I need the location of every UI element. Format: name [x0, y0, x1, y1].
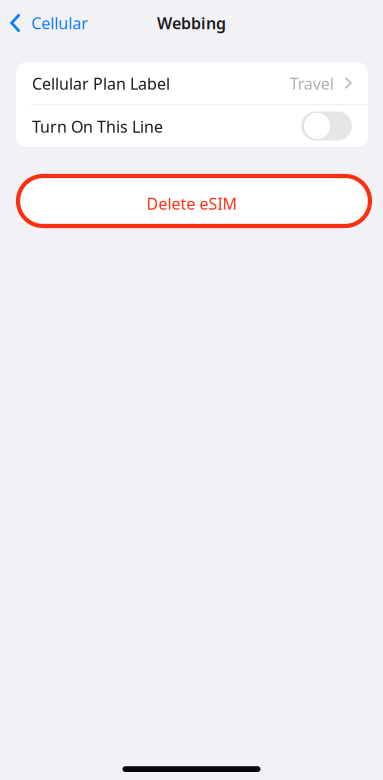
staticText: Turn On This Line: [32, 116, 163, 137]
button[interactable]: Turn On This Line: [301, 111, 352, 140]
button[interactable]: Cellular Plan Label: [16, 62, 368, 104]
staticText: Webbing: [157, 12, 226, 34]
staticText: Cellular Plan Label: [32, 73, 170, 94]
staticText: Delete eSIM: [146, 193, 237, 214]
staticText: Travel: [290, 73, 334, 94]
button[interactable]: Delete eSIM: [18, 176, 370, 226]
staticText: Cellular: [31, 12, 88, 34]
button[interactable]: Cellular: [0, 5, 96, 41]
